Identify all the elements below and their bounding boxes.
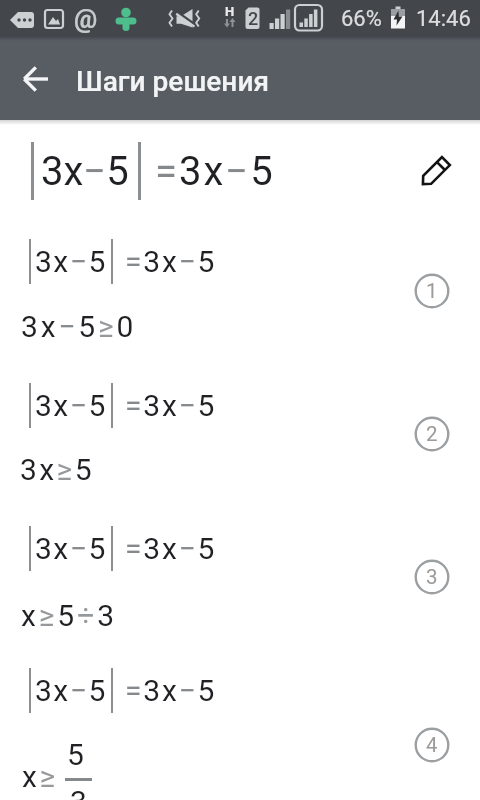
- button[interactable]: 1: [413, 272, 451, 310]
- button[interactable]: [0, 228, 480, 350]
- button[interactable]: [0, 121, 480, 212]
- staticText: x≥5÷3: [21, 598, 117, 633]
- staticText: 3x−5: [41, 148, 129, 195]
- staticText: 3x≥5: [20, 452, 94, 487]
- staticText: 3x−5: [35, 673, 107, 708]
- button[interactable]: [0, 657, 480, 779]
- staticText: =3x−5: [125, 388, 217, 423]
- staticText: 3x−5≥0: [21, 309, 137, 344]
- staticText: Шаги решения: [76, 65, 270, 98]
- staticText: 66%: [341, 6, 382, 32]
- staticText: @: [74, 4, 98, 34]
- staticText: 3: [70, 784, 87, 800]
- staticText: 14:46: [416, 6, 471, 32]
- staticText: 2: [248, 8, 259, 29]
- button[interactable]: [414, 149, 458, 193]
- staticText: 3x−5: [35, 531, 107, 566]
- button[interactable]: [12, 55, 60, 103]
- button[interactable]: 2: [413, 415, 451, 453]
- button[interactable]: [0, 514, 480, 636]
- button[interactable]: 4: [413, 726, 451, 764]
- staticText: =3x−5: [155, 148, 275, 195]
- staticText: 3x−5: [35, 244, 107, 279]
- staticText: 2: [426, 422, 438, 446]
- staticText: 3: [426, 565, 438, 589]
- staticText: 5: [67, 737, 84, 772]
- staticText: 4: [426, 733, 438, 757]
- staticText: =3x−5: [125, 673, 217, 708]
- button[interactable]: [0, 371, 480, 493]
- staticText: 1: [426, 279, 438, 303]
- staticText: =3x−5: [125, 531, 217, 566]
- button[interactable]: 3: [413, 558, 451, 596]
- staticText: =3x−5: [125, 244, 217, 279]
- staticText: H: [225, 4, 235, 19]
- staticText: 3x−5: [35, 388, 107, 423]
- staticText: x≥: [22, 759, 58, 794]
